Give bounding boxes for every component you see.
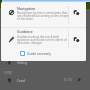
button[interactable]: Guidance: [7, 35, 16, 44]
staticText: Guide reversely: [27, 51, 51, 55]
button[interactable]: Navigation: [7, 8, 16, 17]
staticText: of the track: [17, 17, 34, 21]
button[interactable]: Navigation settings: [72, 8, 81, 17]
staticText: direction changes: [17, 41, 43, 45]
staticText: 0 / 20: [64, 78, 72, 82]
staticText: optional sound and screen alerts of: [17, 38, 67, 42]
button[interactable]: Guide reversely: [20, 48, 51, 58]
button[interactable]: Food: [0, 75, 90, 85]
button[interactable]: Guidance settings: [72, 35, 81, 44]
staticText: Guidance along the track with: [17, 35, 60, 39]
staticText: Navigation: [17, 6, 36, 11]
button[interactable]: Hiking: [0, 57, 90, 67]
staticText: Hiking: [17, 60, 28, 65]
staticText: Guidance: [17, 29, 33, 34]
staticText: are rendered according to the shape: [17, 14, 69, 18]
staticText: FOOD: [4, 71, 12, 75]
staticText: Food: [17, 78, 25, 83]
staticText: Navigation by voice commands that: [17, 11, 68, 15]
